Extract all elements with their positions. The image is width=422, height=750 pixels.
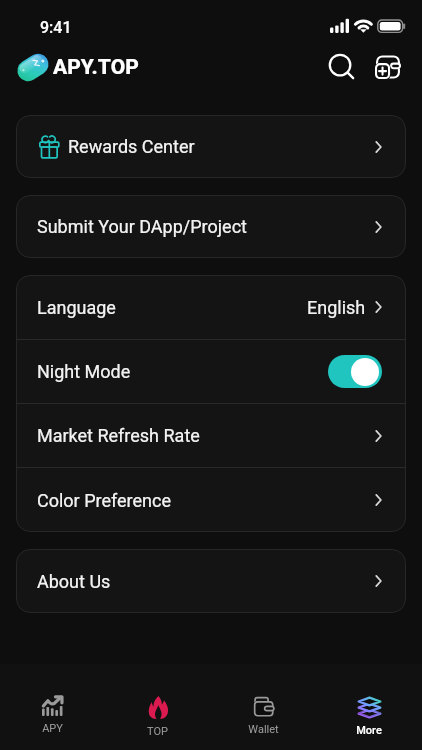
- staticText: Rewards Center: [68, 136, 195, 157]
- button[interactable]: APY: [0, 664, 105, 750]
- staticText: TOP: [147, 725, 168, 738]
- staticText: Language: [37, 297, 116, 318]
- button[interactable]: TOP: [105, 664, 210, 750]
- button[interactable]: Color Preference: [16, 468, 406, 532]
- button[interactable]: Wallet: [210, 664, 316, 750]
- button[interactable]: Rewards Center: [16, 115, 406, 178]
- staticText: More: [356, 724, 382, 737]
- button[interactable]: About Us: [16, 549, 406, 613]
- staticText: About Us: [37, 571, 111, 592]
- button[interactable]: Night Mode toggle: [328, 355, 382, 388]
- staticText: Market Refresh Rate: [37, 425, 200, 446]
- staticText: English: [307, 297, 366, 318]
- staticText: Wallet: [248, 723, 279, 736]
- staticText: Color Preference: [37, 490, 171, 511]
- button[interactable]: More: [316, 664, 422, 750]
- button[interactable]: Night Mode: [16, 340, 406, 403]
- button[interactable]: Search: [322, 47, 362, 87]
- staticText: Night Mode: [37, 361, 131, 382]
- staticText: 9:41: [40, 18, 72, 37]
- button[interactable]: Add wallet: [368, 47, 408, 87]
- button[interactable]: Submit Your DApp/Project: [16, 195, 406, 258]
- staticText: APY.TOP: [53, 55, 139, 80]
- staticText: Submit Your DApp/Project: [37, 216, 247, 237]
- button[interactable]: Language: [16, 275, 406, 339]
- button[interactable]: Market Refresh Rate: [16, 404, 406, 467]
- staticText: APY: [42, 722, 63, 735]
